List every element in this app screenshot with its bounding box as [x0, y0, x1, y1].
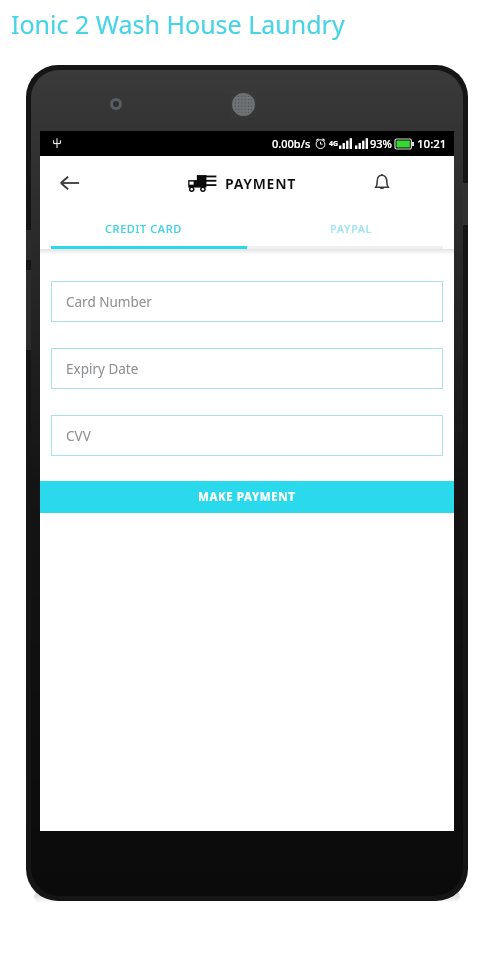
button[interactable]: Expiry Date — [51, 348, 443, 389]
button[interactable]: CREDIT CARD — [40, 210, 247, 246]
staticText: PAYMENT — [225, 174, 297, 193]
button[interactable]: PAYPAL — [247, 210, 454, 246]
staticText: 10:21 — [417, 136, 447, 152]
button[interactable]: MAKE PAYMENT — [40, 481, 454, 513]
button[interactable]: Card Number — [51, 281, 443, 322]
staticText: 93% — [370, 136, 392, 151]
staticText: Ionic 2 Wash House Laundry — [11, 7, 345, 41]
staticText: MAKE PAYMENT — [198, 489, 296, 505]
staticText: PAYPAL — [330, 221, 372, 236]
staticText: CVV — [66, 427, 91, 445]
staticText: 4G — [329, 139, 339, 149]
button[interactable]: CVV — [51, 415, 443, 456]
staticText: Expiry Date — [66, 360, 139, 378]
button[interactable]: Notifications — [370, 171, 394, 195]
staticText: CREDIT CARD — [105, 221, 182, 236]
button[interactable]: Back — [58, 171, 82, 195]
staticText: Card Number — [66, 293, 152, 311]
staticText: 0.00b/s — [272, 136, 311, 151]
